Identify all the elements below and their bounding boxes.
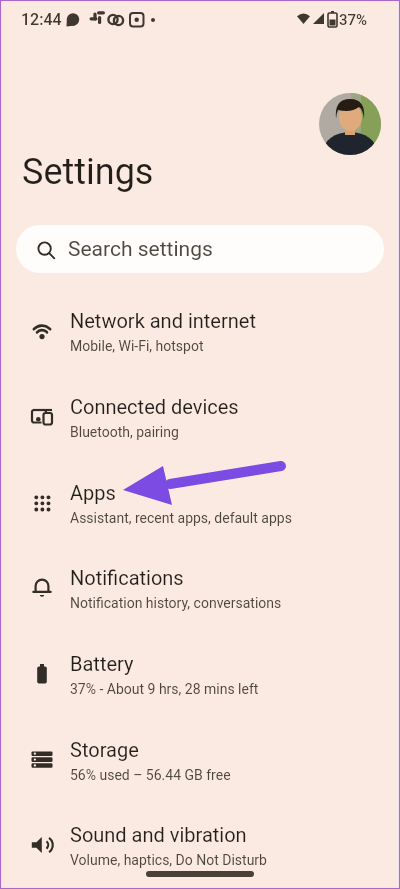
staticText: Network and internet <box>70 309 256 332</box>
staticText: Notification history, conversations <box>70 595 282 611</box>
staticText: Connected devices <box>70 395 239 418</box>
staticText: Volume, haptics, Do Not Disturb <box>70 852 267 868</box>
staticText: Sound and vibration <box>70 823 247 846</box>
staticText: Search settings <box>68 237 213 262</box>
staticText: Notifications <box>70 566 184 589</box>
staticText: Battery <box>70 652 134 675</box>
button[interactable]: Storage <box>0 717 400 803</box>
button[interactable]: Battery <box>0 631 400 717</box>
button[interactable]: Connected devices <box>0 374 400 460</box>
button[interactable]: Apps <box>0 460 400 546</box>
staticText: 37% <box>339 11 368 29</box>
staticText: Storage <box>70 738 139 761</box>
staticText: Bluetooth, pairing <box>70 424 179 440</box>
button[interactable]: Sound and vibration <box>0 802 400 888</box>
staticText: 56% used – 56.44 GB free <box>70 767 231 783</box>
button[interactable]: Search settings <box>16 225 384 273</box>
staticText: Assistant, recent apps, default apps <box>70 510 292 526</box>
button[interactable]: Notifications <box>0 545 400 631</box>
staticText: 12:44 <box>21 10 62 29</box>
button[interactable] <box>319 93 381 155</box>
staticText: 37% - About 9 hrs, 28 mins left <box>70 681 259 697</box>
button[interactable]: Network and internet <box>0 288 400 374</box>
staticText: Settings <box>22 151 154 193</box>
staticText: Mobile, Wi-Fi, hotspot <box>70 338 204 354</box>
staticText: Apps <box>70 481 116 504</box>
